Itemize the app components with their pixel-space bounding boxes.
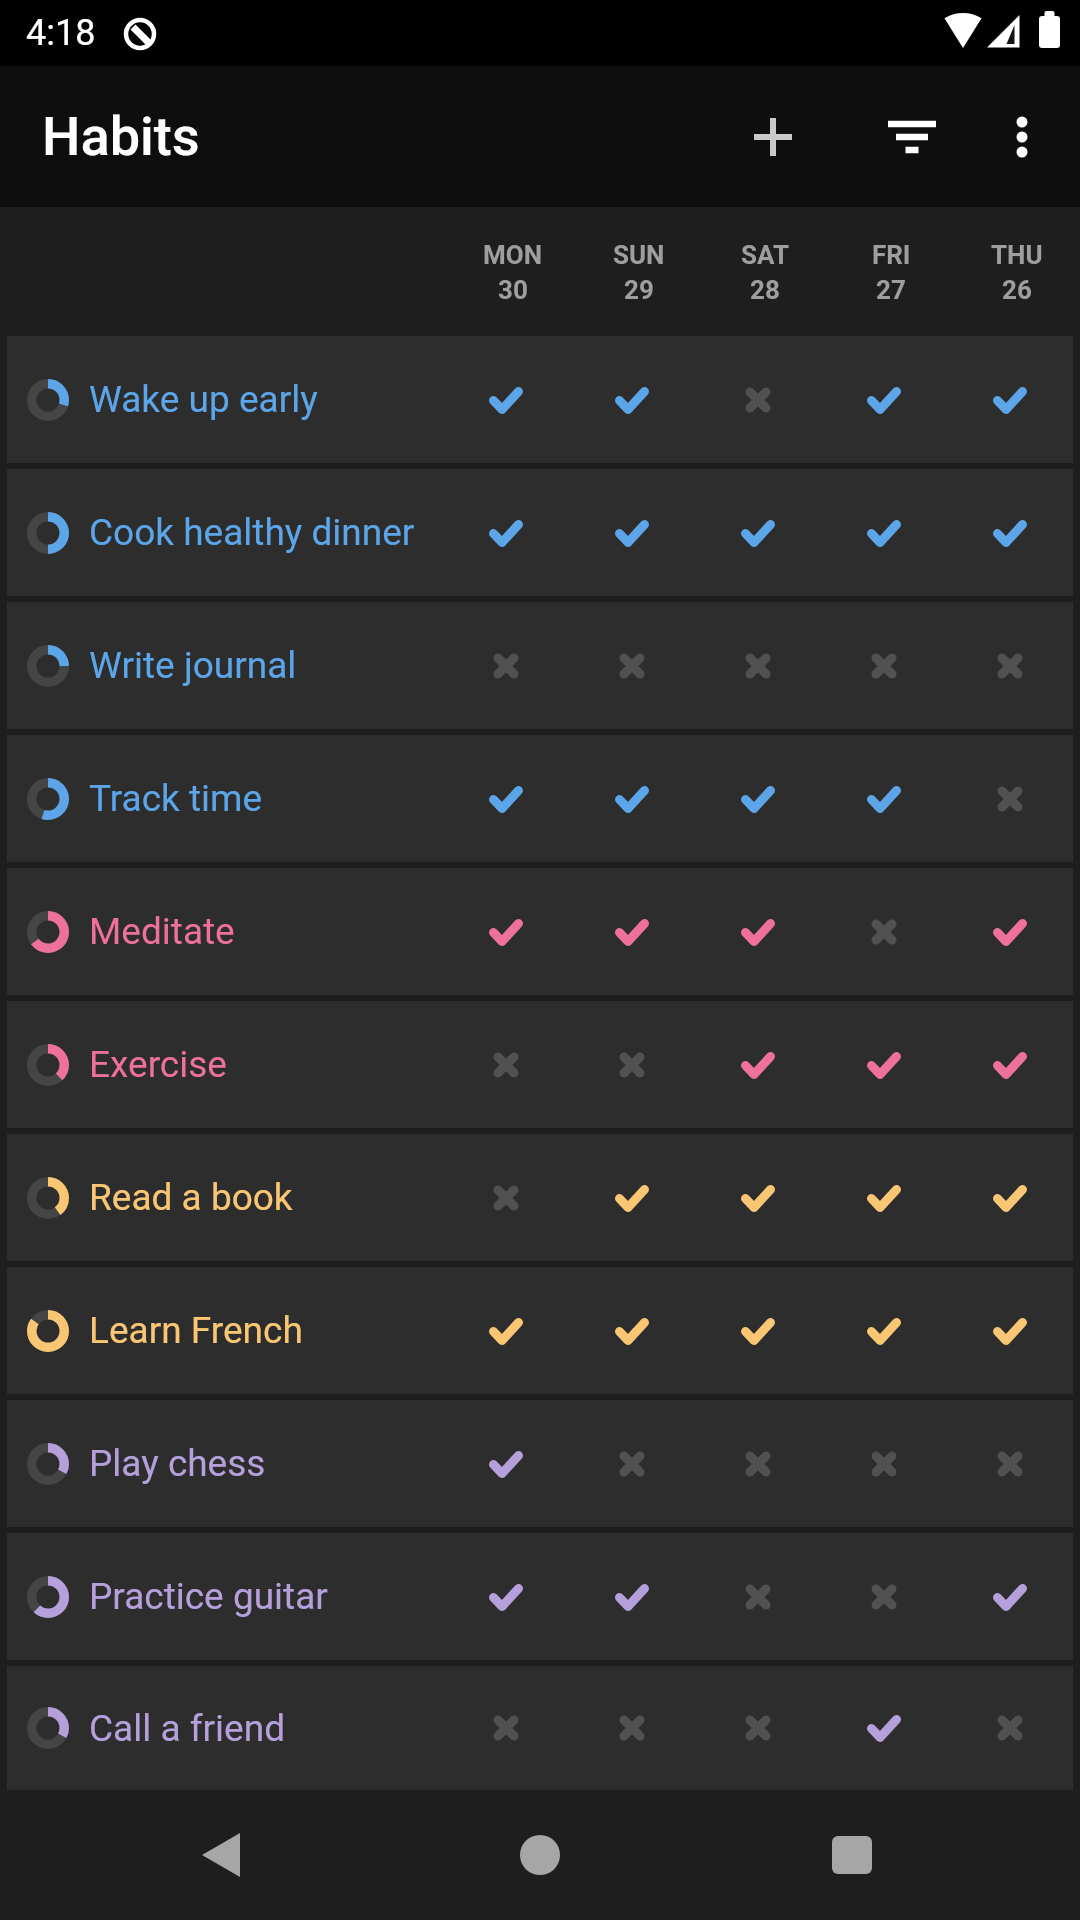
staticText: 30 — [498, 275, 528, 305]
button[interactable] — [695, 1400, 821, 1527]
button[interactable] — [569, 735, 695, 862]
button[interactable] — [821, 469, 947, 596]
button[interactable] — [695, 1533, 821, 1660]
button[interactable] — [695, 1666, 821, 1790]
staticText: 27 — [876, 275, 906, 305]
button[interactable] — [947, 868, 1073, 995]
button[interactable] — [821, 735, 947, 862]
button[interactable] — [569, 1267, 695, 1394]
button[interactable] — [443, 602, 569, 729]
button[interactable] — [443, 1134, 569, 1261]
staticText: 26 — [1002, 275, 1032, 305]
button[interactable]: Write journal — [7, 602, 1073, 729]
button[interactable] — [569, 1533, 695, 1660]
staticText: Call a friend — [89, 1707, 286, 1750]
button[interactable] — [443, 1267, 569, 1394]
button[interactable]: Practice guitar — [7, 1533, 1073, 1660]
button[interactable] — [821, 1001, 947, 1128]
button[interactable]: Call a friend — [7, 1666, 1073, 1790]
button[interactable] — [443, 735, 569, 862]
button[interactable] — [695, 1134, 821, 1261]
staticText: Wake up early — [89, 378, 318, 421]
button[interactable] — [492, 1807, 588, 1903]
button[interactable]: Exercise — [7, 1001, 1073, 1128]
button[interactable] — [695, 336, 821, 463]
button[interactable] — [695, 735, 821, 862]
button[interactable] — [443, 868, 569, 995]
button[interactable] — [821, 868, 947, 995]
staticText: Cook healthy dinner — [89, 511, 415, 554]
staticText: SUN — [613, 240, 665, 270]
button[interactable] — [804, 1807, 900, 1903]
staticText: THU — [991, 240, 1043, 270]
button[interactable] — [569, 469, 695, 596]
button[interactable] — [443, 1666, 569, 1790]
button[interactable] — [821, 1666, 947, 1790]
staticText: 4:18 — [26, 12, 96, 54]
button[interactable] — [821, 1400, 947, 1527]
button[interactable] — [695, 602, 821, 729]
staticText: Exercise — [89, 1043, 227, 1086]
staticText: Play chess — [89, 1442, 266, 1485]
staticText: Habits — [42, 105, 200, 168]
button[interactable]: Learn French — [7, 1267, 1073, 1394]
button[interactable] — [443, 336, 569, 463]
staticText: Read a book — [89, 1176, 293, 1219]
button[interactable] — [821, 602, 947, 729]
button[interactable] — [695, 1001, 821, 1128]
staticText: Meditate — [89, 910, 235, 953]
button[interactable] — [947, 336, 1073, 463]
button[interactable] — [821, 1533, 947, 1660]
staticText: FRI — [872, 240, 911, 270]
staticText: SAT — [741, 240, 790, 270]
button[interactable] — [569, 1001, 695, 1128]
button[interactable] — [821, 336, 947, 463]
button[interactable] — [569, 1400, 695, 1527]
button[interactable] — [947, 735, 1073, 862]
button[interactable]: Read a book — [7, 1134, 1073, 1261]
button[interactable] — [443, 1001, 569, 1128]
button[interactable] — [569, 336, 695, 463]
button[interactable] — [443, 469, 569, 596]
staticText: Learn French — [89, 1309, 303, 1352]
staticText: Track time — [89, 777, 263, 820]
button[interactable] — [884, 109, 940, 165]
button[interactable] — [695, 1267, 821, 1394]
button[interactable] — [569, 602, 695, 729]
button[interactable] — [745, 109, 801, 165]
button[interactable] — [443, 1400, 569, 1527]
button[interactable] — [947, 1267, 1073, 1394]
button[interactable] — [947, 602, 1073, 729]
button[interactable] — [695, 868, 821, 995]
button[interactable] — [569, 1134, 695, 1261]
button[interactable] — [180, 1807, 276, 1903]
button[interactable] — [821, 1134, 947, 1261]
button[interactable] — [994, 109, 1050, 165]
staticText: 29 — [624, 275, 654, 305]
button[interactable] — [821, 1267, 947, 1394]
button[interactable]: Track time — [7, 735, 1073, 862]
button[interactable] — [569, 868, 695, 995]
button[interactable] — [947, 469, 1073, 596]
button[interactable]: Wake up early — [7, 336, 1073, 463]
button[interactable]: Play chess — [7, 1400, 1073, 1527]
button[interactable] — [947, 1001, 1073, 1128]
staticText: Practice guitar — [89, 1575, 328, 1618]
button[interactable] — [947, 1533, 1073, 1660]
button[interactable] — [947, 1134, 1073, 1261]
button[interactable]: Cook healthy dinner — [7, 469, 1073, 596]
staticText: Write journal — [89, 644, 297, 687]
button[interactable] — [695, 469, 821, 596]
button[interactable] — [443, 1533, 569, 1660]
button[interactable] — [947, 1666, 1073, 1790]
button[interactable]: Meditate — [7, 868, 1073, 995]
button[interactable] — [569, 1666, 695, 1790]
staticText: 28 — [750, 275, 780, 305]
staticText: MON — [483, 240, 543, 270]
button[interactable] — [947, 1400, 1073, 1527]
